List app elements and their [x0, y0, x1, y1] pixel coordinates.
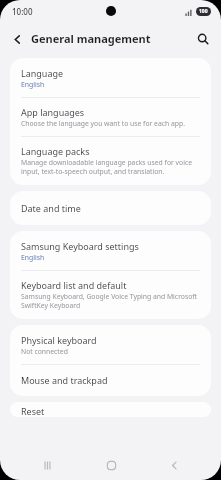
staticText: Manage downloadable language packs used …	[21, 158, 199, 176]
button[interactable]: Date and time	[10, 191, 211, 225]
button[interactable]: Home	[94, 450, 128, 480]
button[interactable]: Samsung Keyboard settings	[10, 231, 211, 270]
staticText: Samsung Keyboard settings	[21, 240, 139, 252]
staticText: English	[21, 253, 45, 262]
button[interactable]: Reset	[10, 402, 211, 417]
staticText: Not connected	[21, 347, 68, 356]
staticText: Language	[21, 67, 64, 79]
staticText: Mouse and trackpad	[21, 374, 108, 386]
staticText: Reset	[21, 405, 45, 417]
button[interactable]: Back	[5, 27, 29, 51]
button[interactable]: Back	[157, 450, 191, 480]
button[interactable]: Recent apps	[30, 450, 64, 480]
button[interactable]: Language	[10, 58, 211, 97]
staticText: Language packs	[21, 145, 90, 157]
button[interactable]: Search	[191, 27, 215, 51]
staticText: Physical keyboard	[21, 334, 97, 346]
button[interactable]: App languages	[10, 98, 211, 136]
button[interactable]: Language packs	[10, 137, 211, 185]
staticText: General management	[31, 31, 151, 46]
staticText: Choose the language you want to use for …	[21, 119, 185, 128]
staticText: 10:00	[12, 6, 33, 17]
button[interactable]: Keyboard list and default	[10, 271, 211, 319]
staticText: 100	[199, 8, 208, 15]
staticText: Date and time	[21, 202, 81, 214]
staticText: Keyboard list and default	[21, 279, 127, 291]
staticText: English	[21, 80, 45, 89]
button[interactable]: Mouse and trackpad	[10, 365, 211, 396]
button[interactable]: Physical keyboard	[10, 325, 211, 364]
staticText: App languages	[21, 106, 85, 118]
staticText: Samsung Keyboard, Google Voice Typing an…	[21, 292, 199, 310]
